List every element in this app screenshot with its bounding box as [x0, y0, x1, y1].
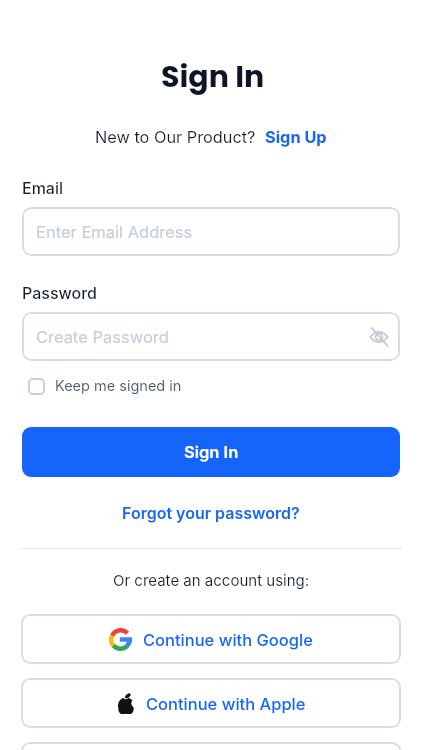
staticText: Password [22, 283, 97, 302]
button[interactable]: Continue with Google [21, 614, 401, 664]
staticText: Continue with Google [143, 630, 313, 650]
button[interactable]: Enter Email Address [22, 207, 400, 256]
button[interactable]: Keep me signed in [28, 377, 182, 395]
button[interactable]: Create Password [22, 312, 400, 361]
staticText: Or create an account using: [113, 571, 310, 589]
button[interactable]: Forgot your password? [122, 503, 300, 522]
staticText: Email [22, 178, 64, 197]
staticText: Sign In [184, 442, 239, 462]
staticText: New to Our Product? [95, 127, 256, 147]
button[interactable]: Sign In [22, 427, 400, 477]
staticText: Create Password [36, 327, 169, 347]
staticText: Continue with Apple [146, 694, 306, 714]
staticText: Enter Email Address [36, 222, 193, 242]
button[interactable]: Continue with Apple [21, 678, 401, 728]
staticText: Keep me signed in [55, 377, 182, 395]
button[interactable]: Sign Up [265, 127, 327, 147]
staticText: Sign In [161, 56, 265, 98]
